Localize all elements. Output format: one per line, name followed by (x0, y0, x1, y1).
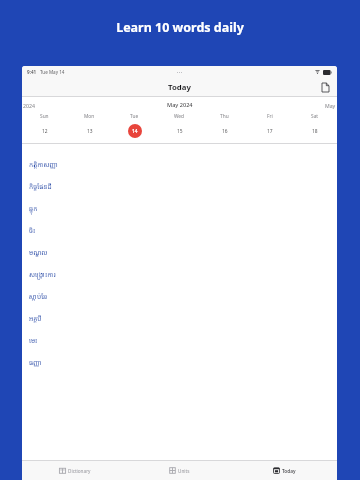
button[interactable]: 18 (292, 124, 337, 138)
button[interactable]: ធញ្ញា (22, 351, 337, 373)
button[interactable]: Dictionary (22, 461, 127, 480)
staticText: Today (168, 82, 191, 93)
button[interactable]: កិច្ចផែនដី (22, 175, 337, 197)
staticText: May (325, 102, 336, 109)
staticText: Tue May 14 (40, 69, 65, 75)
button[interactable]: ស្អាប់រែរ (22, 285, 337, 307)
button[interactable]: អគ្គបី (22, 307, 337, 329)
button[interactable]: ចិះ (22, 219, 337, 241)
staticText: 14 (132, 128, 138, 135)
staticText: 15 (177, 128, 183, 135)
staticText: 18 (312, 128, 318, 135)
staticText: Wed (174, 113, 185, 120)
staticText: 12 (42, 128, 48, 135)
staticText: កិច្ចផែនដី (29, 182, 52, 191)
staticText: Units (178, 468, 190, 474)
staticText: 9:41 (27, 69, 37, 75)
staticText: Sat (311, 113, 319, 120)
button[interactable]: មណ្ឌល (22, 241, 337, 263)
staticText: ធញ្ញា (29, 358, 42, 367)
staticText: ចិះ (29, 226, 36, 235)
button[interactable]: 17 (247, 124, 292, 138)
button[interactable]: Today (232, 461, 337, 480)
staticText: May 2024 (167, 101, 193, 109)
staticText: Learn 10 words daily (116, 19, 244, 36)
staticText: 2024 (23, 102, 35, 109)
staticText: Tue (130, 113, 139, 120)
button[interactable]: កត្តិកាសញ្ញា (22, 153, 337, 175)
staticText: ឆ្នុក (29, 204, 38, 213)
button[interactable]: សង្គ្រោះការ (22, 263, 337, 285)
staticText: ស្អាប់រែរ (29, 292, 47, 301)
button[interactable]: 13 (67, 124, 112, 138)
button[interactable]: New note (317, 79, 333, 95)
staticText: មេះ (29, 336, 38, 345)
button[interactable]: 12 (22, 124, 67, 138)
staticText: Dictionary (68, 468, 91, 474)
staticText: Sun (40, 113, 49, 120)
button[interactable]: 15 (157, 124, 202, 138)
staticText: 13 (87, 128, 93, 135)
staticText: Mon (84, 113, 95, 120)
staticText: 17 (267, 128, 273, 135)
staticText: អគ្គបី (29, 314, 42, 323)
staticText: Fri (267, 113, 273, 120)
button[interactable]: 14 (112, 124, 157, 138)
button[interactable]: Units (127, 461, 232, 480)
button[interactable]: ឆ្នុក (22, 197, 337, 219)
staticText: 16 (222, 128, 228, 135)
button[interactable]: មេះ (22, 329, 337, 351)
staticText: កត្តិកាសញ្ញា (29, 160, 58, 169)
staticText: Thu (220, 113, 229, 120)
button[interactable]: 16 (202, 124, 247, 138)
staticText: មណ្ឌល (29, 248, 48, 257)
staticText: សង្គ្រោះការ (29, 270, 56, 279)
staticText: Today (282, 468, 296, 474)
